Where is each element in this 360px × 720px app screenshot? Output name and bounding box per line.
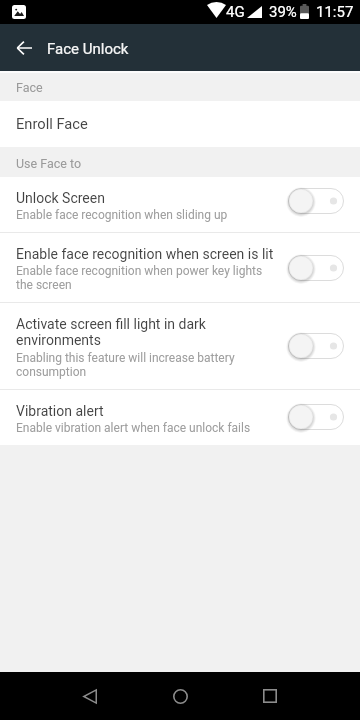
- button[interactable]: Navigate up: [4, 28, 44, 68]
- staticText: Enabling this feature will increase batt…: [16, 351, 276, 379]
- staticText: Enable face recognition when screen is l…: [16, 246, 274, 262]
- staticText: Unlock Screen: [16, 190, 105, 206]
- staticText: Activate screen fill light in dark envir…: [16, 316, 276, 349]
- staticText: 4G: [226, 3, 245, 21]
- button[interactable]: Vibration alert: [0, 390, 360, 445]
- staticText: Face: [16, 80, 43, 95]
- staticText: Enable face recognition when sliding up: [16, 208, 228, 222]
- button[interactable]: Recent apps: [240, 672, 300, 720]
- staticText: Enable vibration alert when face unlock …: [16, 421, 251, 435]
- button[interactable]: Back: [60, 672, 120, 720]
- button[interactable]: Enroll Face: [0, 101, 360, 147]
- staticText: 11:57: [316, 3, 354, 21]
- button[interactable]: Enable face recognition when screen is l…: [0, 233, 360, 302]
- staticText: 39%: [269, 3, 297, 21]
- staticText: Enroll Face: [16, 115, 88, 132]
- button[interactable]: Toggle, off: [288, 254, 344, 282]
- staticText: Face Unlock: [47, 40, 129, 58]
- staticText: Vibration alert: [16, 403, 104, 419]
- button[interactable]: Home: [150, 672, 210, 720]
- button[interactable]: Toggle, off: [288, 187, 344, 215]
- staticText: Use Face to: [16, 156, 82, 171]
- button[interactable]: Activate screen fill light in dark envir…: [0, 303, 360, 389]
- button[interactable]: Unlock Screen: [0, 177, 360, 232]
- button[interactable]: Toggle, off: [288, 332, 344, 360]
- staticText: Enable face recognition when power key l…: [16, 264, 276, 292]
- button[interactable]: Toggle, off: [288, 403, 344, 431]
